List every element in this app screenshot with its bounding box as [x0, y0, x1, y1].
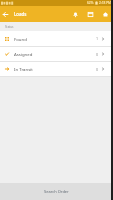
button[interactable]: Home: [98, 6, 113, 22]
button[interactable]: In Transit: [0, 62, 113, 76]
button[interactable]: Back: [0, 6, 11, 22]
staticText: 2:18 PM: [99, 1, 111, 5]
button[interactable]: Search Order: [0, 183, 113, 200]
button[interactable]: Assigned: [0, 47, 113, 61]
staticText: 1: [96, 36, 99, 41]
button[interactable]: Switch view: [83, 6, 98, 22]
button[interactable]: Notifications: [68, 6, 83, 22]
staticText: Assigned: [14, 51, 33, 57]
staticText: 0: [96, 52, 99, 57]
staticText: Loads: [14, 11, 27, 17]
staticText: Status: [5, 25, 14, 29]
staticText: In Transit: [14, 66, 33, 72]
staticText: Search Order: [44, 189, 69, 194]
button[interactable]: Found: [0, 31, 113, 46]
staticText: 0: [96, 67, 99, 72]
staticText: Found: [14, 36, 27, 42]
staticText: 62%: [87, 1, 94, 5]
